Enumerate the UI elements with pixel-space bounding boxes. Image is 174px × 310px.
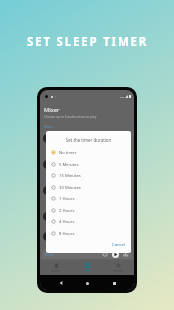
button[interactable]: Thunder <box>43 151 131 177</box>
button[interactable]: No timer <box>46 147 131 158</box>
staticText: 15 Minutes <box>59 173 81 179</box>
staticText: 4 Hours <box>59 219 75 225</box>
staticText: No timer <box>59 150 77 156</box>
button[interactable]: Mixer <box>72 260 103 275</box>
staticText: 5 Minutes <box>59 162 79 168</box>
button[interactable]: 4 Hours <box>46 216 131 227</box>
button[interactable]: 5 Minutes <box>46 159 131 170</box>
staticText: 30 Minutes <box>59 185 81 191</box>
button[interactable]: 15 Minutes <box>46 170 131 181</box>
staticText: Mixer <box>84 269 92 273</box>
staticText: 8 Hours <box>59 231 75 237</box>
staticText: Rain <box>44 124 53 130</box>
staticText: Mixer <box>44 106 60 114</box>
staticText: Wind <box>55 187 64 192</box>
staticText: 2 Hours <box>59 208 75 214</box>
button[interactable]: Home <box>81 277 93 289</box>
button[interactable]: 8 Hours <box>46 228 131 239</box>
staticText: LTE <box>120 95 124 98</box>
button[interactable]: 1 Hours <box>46 193 131 204</box>
button[interactable]: 2 Hours <box>46 205 131 216</box>
button[interactable]: Equalizer <box>123 251 129 257</box>
button[interactable]: Sleep timer <box>102 251 108 257</box>
button[interactable]: Rain <box>43 125 131 151</box>
button[interactable]: Birds <box>43 229 131 243</box>
button[interactable]: 30 Minutes <box>46 182 131 193</box>
staticText: 1 Hours <box>59 196 75 202</box>
staticText: SET SLEEP TIMER <box>27 34 149 50</box>
staticText: Choose up to 5 audio mixes to play <box>44 115 97 119</box>
staticText: Cancel <box>112 242 126 248</box>
button[interactable]: Wind <box>43 177 131 203</box>
button[interactable]: Cancel <box>110 241 128 249</box>
button[interactable]: Play <box>112 251 119 258</box>
button[interactable]: Recents <box>108 277 120 289</box>
staticText: Thunder <box>55 161 70 166</box>
staticText: Set the timer duration <box>46 137 131 143</box>
button[interactable]: Home <box>40 260 72 275</box>
staticText: Settings <box>113 269 124 273</box>
staticText: Relax <box>45 252 55 257</box>
button[interactable]: Fire <box>43 203 131 229</box>
button[interactable]: Back <box>55 277 67 289</box>
staticText: Birds <box>55 233 64 238</box>
button[interactable]: Relax <box>45 249 129 259</box>
staticText: Home <box>52 269 60 273</box>
